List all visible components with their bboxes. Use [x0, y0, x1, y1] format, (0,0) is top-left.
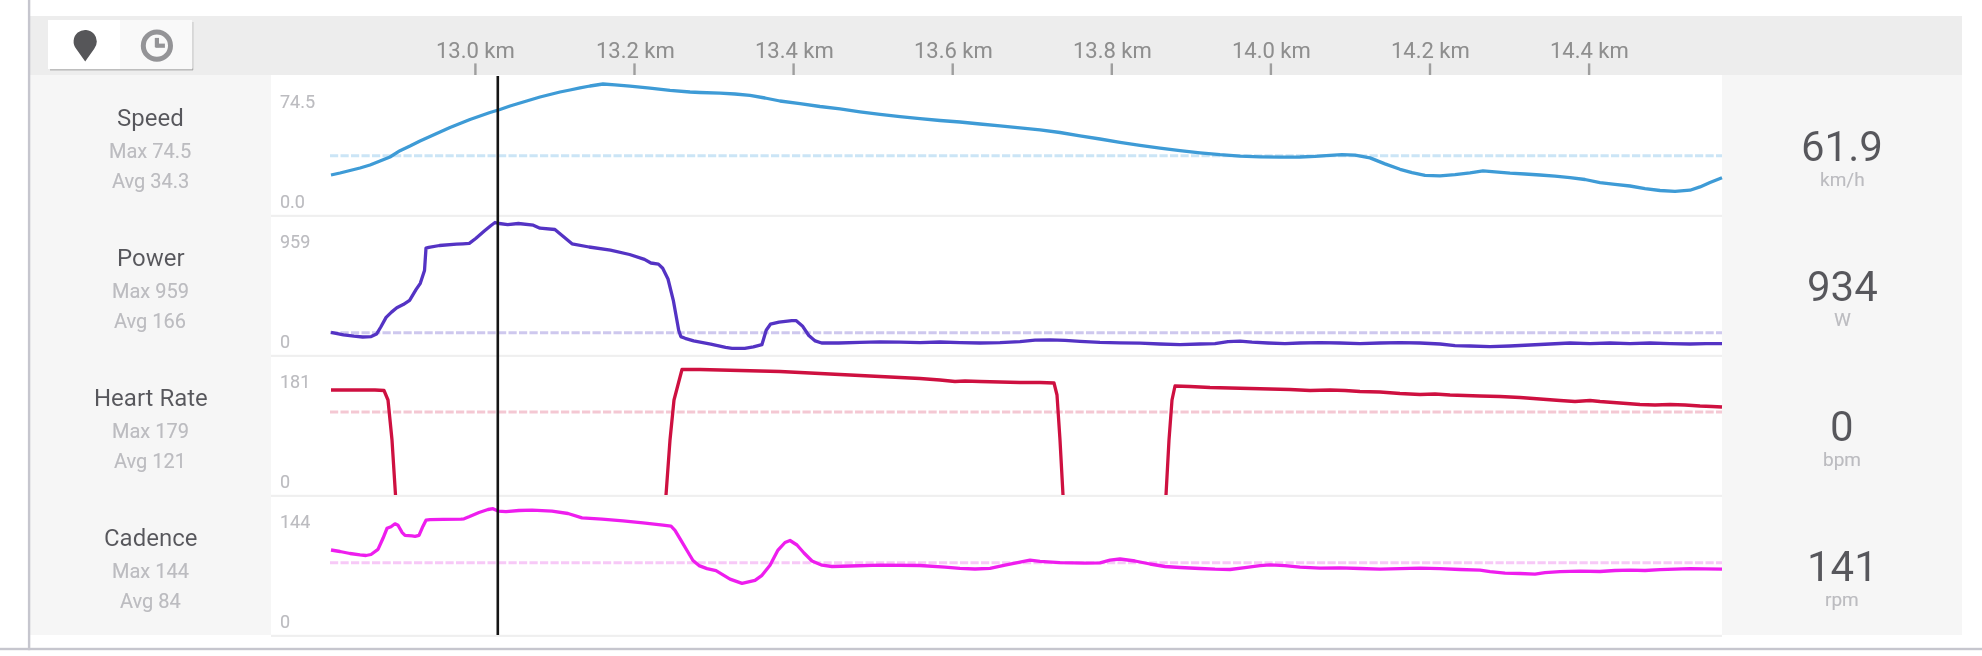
staticText: 74.5	[280, 91, 316, 112]
staticText: 13.8 km	[1073, 38, 1152, 64]
staticText: Avg 121	[114, 449, 187, 472]
staticText: 0	[1830, 402, 1854, 451]
button[interactable]: 934	[1722, 215, 1962, 355]
button[interactable]: Time axis	[120, 20, 192, 69]
staticText: 13.4 km	[755, 38, 834, 64]
staticText: rpm	[1825, 588, 1859, 610]
button[interactable]: 61.9	[1722, 75, 1962, 215]
staticText: Avg 34.3	[112, 169, 190, 192]
button[interactable]: Distance axis	[48, 20, 120, 69]
staticText: 181	[280, 371, 311, 392]
staticText: 141	[1807, 542, 1878, 591]
staticText: 959	[280, 231, 311, 252]
staticText: 14.0 km	[1232, 38, 1311, 64]
staticText: W	[1834, 308, 1851, 330]
staticText: Max 144	[112, 559, 189, 582]
staticText: 14.4 km	[1550, 38, 1629, 64]
button[interactable]: 141	[1722, 495, 1962, 635]
staticText: Max 74.5	[109, 139, 192, 162]
staticText: 13.0 km	[436, 38, 515, 64]
staticText: 14.2 km	[1391, 38, 1470, 64]
button[interactable]: 0	[1722, 355, 1962, 495]
staticText: 934	[1807, 262, 1878, 311]
staticText: bpm	[1823, 448, 1861, 470]
staticText: Heart Rate	[94, 384, 208, 412]
button[interactable]: Speed	[30, 75, 271, 215]
button[interactable]: Cadence	[30, 495, 271, 635]
staticText: 0.0	[280, 191, 305, 212]
staticText: Max 959	[112, 279, 189, 302]
staticText: Power	[117, 244, 185, 272]
staticText: km/h	[1820, 168, 1865, 190]
staticText: Cadence	[104, 524, 198, 552]
staticText: Speed	[117, 104, 184, 132]
staticText: 13.6 km	[914, 38, 993, 64]
staticText: 0	[280, 611, 291, 632]
staticText: Avg 166	[114, 309, 187, 332]
staticText: Max 179	[112, 419, 189, 442]
staticText: 13.2 km	[596, 38, 675, 64]
staticText: Avg 84	[120, 589, 181, 612]
button[interactable]: Power	[30, 215, 271, 355]
staticText: 0	[280, 471, 291, 492]
staticText: 144	[280, 511, 311, 532]
button[interactable]: Heart Rate	[30, 355, 271, 495]
staticText: 0	[280, 331, 291, 352]
staticText: 61.9	[1801, 122, 1883, 171]
